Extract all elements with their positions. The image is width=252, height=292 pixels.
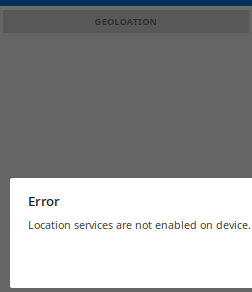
staticText: Location services are not enabled on dev… (28, 218, 251, 232)
button[interactable]: GEOLOATION (95, 15, 157, 28)
staticText: GEOLOATION (95, 15, 157, 28)
staticText: Error (28, 192, 60, 210)
